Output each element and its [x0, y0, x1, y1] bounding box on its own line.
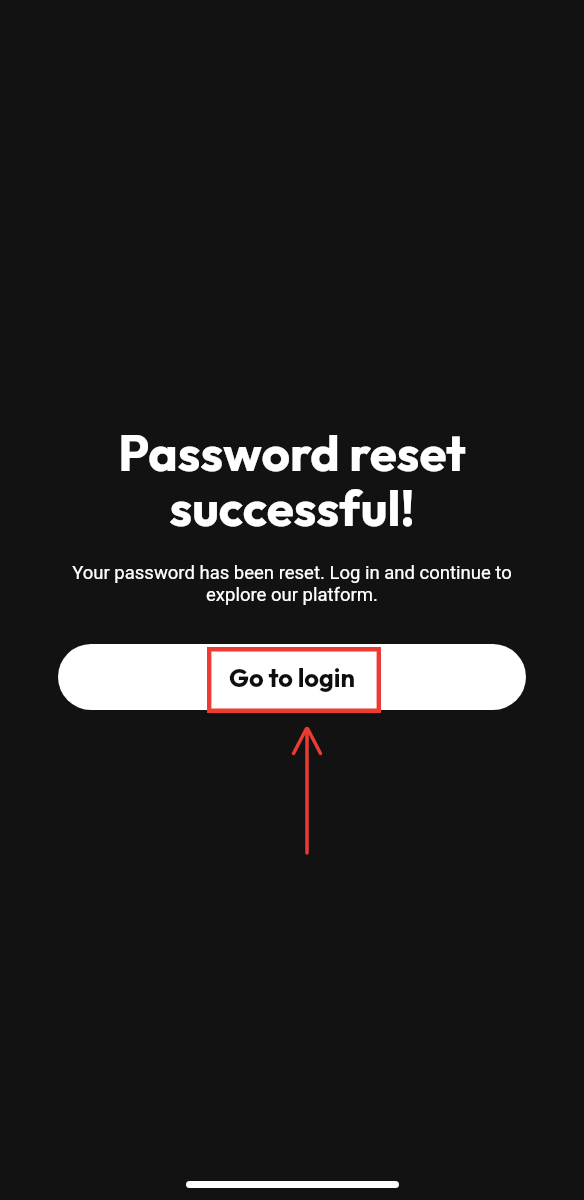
other: Home indicator	[186, 1181, 399, 1188]
staticText: Password reset successful!	[92, 421, 492, 539]
button[interactable]: Go to login	[58, 644, 526, 710]
staticText: Your password has been reset. Log in and…	[57, 562, 527, 605]
staticText: Go to login	[229, 662, 355, 694]
